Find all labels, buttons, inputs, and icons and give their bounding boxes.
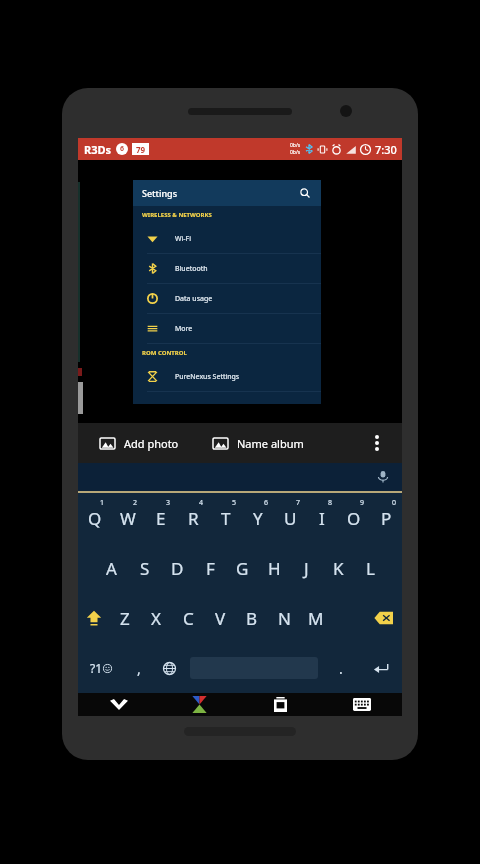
- button[interactable]: K: [322, 543, 354, 593]
- button[interactable]: G: [226, 543, 258, 593]
- button[interactable]: L: [354, 543, 386, 593]
- button[interactable]: B: [236, 593, 268, 643]
- staticText: Data usage: [175, 294, 213, 304]
- staticText: ?1: [90, 660, 103, 676]
- button[interactable]: Hide keyboard: [78, 693, 159, 716]
- button[interactable]: 6: [242, 493, 274, 543]
- button[interactable]: Data usage: [133, 284, 321, 313]
- staticText: ,: [137, 659, 141, 678]
- button[interactable]: D: [161, 543, 194, 593]
- button[interactable]: H: [258, 543, 290, 593]
- staticText: ROM CONTROL: [142, 349, 187, 357]
- staticText: H: [268, 557, 281, 580]
- staticText: 6: [264, 498, 269, 508]
- staticText: K: [333, 557, 344, 580]
- staticText: O: [347, 507, 361, 530]
- button[interactable]: C: [172, 593, 204, 643]
- button[interactable]: 5: [210, 493, 242, 543]
- staticText: J: [304, 557, 309, 580]
- staticText: M: [308, 607, 324, 630]
- button[interactable]: ,: [124, 643, 154, 693]
- staticText: 1: [100, 498, 105, 508]
- other: Voice input: [372, 466, 394, 488]
- button[interactable]: J: [290, 543, 322, 593]
- button[interactable]: 9: [338, 493, 370, 543]
- staticText: Name album: [237, 436, 304, 451]
- staticText: .: [339, 659, 343, 678]
- button[interactable]: PureNexus Settings: [133, 362, 321, 391]
- staticText: R3Ds: [84, 142, 112, 157]
- button[interactable]: Change language: [154, 643, 184, 693]
- button[interactable]: 8: [306, 493, 338, 543]
- button[interactable]: Wi-Fi: [133, 224, 321, 253]
- button[interactable]: Home: [159, 693, 240, 716]
- staticText: 6: [120, 144, 125, 154]
- button[interactable]: Switch keyboard: [321, 693, 402, 716]
- staticText: W: [120, 507, 136, 530]
- button[interactable]: X: [140, 593, 172, 643]
- staticText: 7:30: [375, 142, 397, 157]
- staticText: WIRELESS & NETWORKS: [142, 211, 212, 219]
- button[interactable]: Name album: [209, 432, 308, 455]
- staticText: R: [188, 507, 199, 530]
- button[interactable]: 3: [144, 493, 177, 543]
- button[interactable]: Add photo: [96, 432, 183, 455]
- staticText: 2: [133, 498, 138, 508]
- button[interactable]: 0: [370, 493, 402, 543]
- button[interactable]: 1: [78, 493, 111, 543]
- staticText: 3: [166, 498, 171, 508]
- staticText: I: [319, 507, 325, 530]
- button[interactable]: Space: [184, 643, 323, 693]
- button[interactable]: Z: [109, 593, 140, 643]
- staticText: B: [246, 607, 258, 630]
- button[interactable]: More: [133, 314, 321, 343]
- button[interactable]: M: [300, 593, 332, 643]
- staticText: V: [215, 607, 226, 630]
- staticText: 5: [232, 498, 237, 508]
- staticText: S: [140, 557, 150, 580]
- staticText: G: [236, 557, 249, 580]
- button[interactable]: F: [194, 543, 226, 593]
- staticText: 0b/s: [290, 149, 301, 156]
- staticText: Q: [88, 507, 102, 530]
- button[interactable]: V: [204, 593, 236, 643]
- staticText: L: [366, 557, 375, 580]
- button[interactable]: More options: [360, 426, 394, 460]
- button[interactable]: Bluetooth: [133, 254, 321, 283]
- button[interactable]: Enter: [359, 643, 402, 693]
- button[interactable]: N: [268, 593, 300, 643]
- staticText: Add photo: [124, 436, 179, 451]
- staticText: 7: [296, 498, 301, 508]
- staticText: 9: [360, 498, 365, 508]
- staticText: N: [278, 607, 291, 630]
- staticText: A: [106, 557, 117, 580]
- staticText: T: [221, 507, 231, 530]
- staticText: E: [156, 507, 166, 530]
- button[interactable]: Shift: [78, 593, 109, 643]
- staticText: 0: [392, 498, 397, 508]
- staticText: P: [381, 507, 392, 530]
- staticText: 0b/s: [290, 142, 301, 149]
- staticText: 4: [199, 498, 204, 508]
- button[interactable]: 7: [274, 493, 306, 543]
- button[interactable]: Search: [298, 186, 312, 200]
- staticText: 79: [136, 144, 146, 155]
- button[interactable]: S: [128, 543, 161, 593]
- button[interactable]: Voice input: [78, 463, 402, 491]
- button[interactable]: .: [323, 643, 359, 693]
- button[interactable]: 4: [177, 493, 210, 543]
- staticText: 8: [328, 498, 333, 508]
- staticText: D: [171, 557, 184, 580]
- staticText: More: [175, 324, 193, 334]
- staticText: PureNexus Settings: [175, 372, 240, 382]
- staticText: X: [151, 607, 161, 630]
- staticText: Bluetooth: [175, 264, 208, 274]
- staticText: Settings: [142, 187, 178, 199]
- button[interactable]: Recents: [240, 693, 321, 716]
- staticText: Y: [253, 507, 263, 530]
- button[interactable]: 2: [111, 493, 144, 543]
- button[interactable]: A: [95, 543, 128, 593]
- button[interactable]: Backspace: [364, 593, 402, 643]
- button[interactable]: ?1: [78, 643, 124, 693]
- staticText: U: [284, 507, 297, 530]
